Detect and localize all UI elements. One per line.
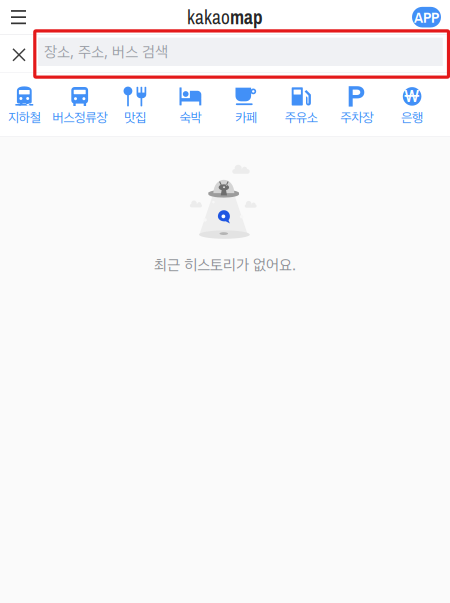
staticText: 주차장 <box>340 110 373 125</box>
button[interactable]: ₩ <box>384 73 440 136</box>
staticText: 최근 히스토리가 없어요. <box>154 256 296 274</box>
staticText: 버스정류장 <box>52 110 107 125</box>
button[interactable]: 주차장 <box>329 73 384 136</box>
staticText: 지하철 <box>8 110 41 125</box>
button[interactable]: Open app <box>407 0 450 34</box>
staticText: 맛집 <box>124 110 146 125</box>
staticText: 장소, 주소, 버스 검색 <box>44 43 168 61</box>
button[interactable]: Menu <box>0 0 37 34</box>
staticText: 주유소 <box>285 110 318 125</box>
staticText: APP <box>414 7 439 27</box>
button[interactable]: 주유소 <box>274 73 329 136</box>
button[interactable]: 맛집 <box>107 73 163 136</box>
staticText: 숙박 <box>179 110 201 125</box>
staticText: map <box>230 4 263 30</box>
staticText: ₩ <box>404 87 420 106</box>
staticText: 은행 <box>401 110 423 125</box>
button[interactable]: Clear search <box>0 36 38 73</box>
button[interactable]: 지하철 <box>0 73 52 136</box>
button[interactable]: 버스정류장 <box>52 73 107 136</box>
button[interactable]: 숙박 <box>163 73 218 136</box>
button[interactable]: 장소, 주소, 버스 검색 <box>38 35 443 75</box>
staticText: 카페 <box>235 110 257 125</box>
button[interactable]: 카페 <box>218 73 274 136</box>
staticText: kakao <box>187 4 230 30</box>
